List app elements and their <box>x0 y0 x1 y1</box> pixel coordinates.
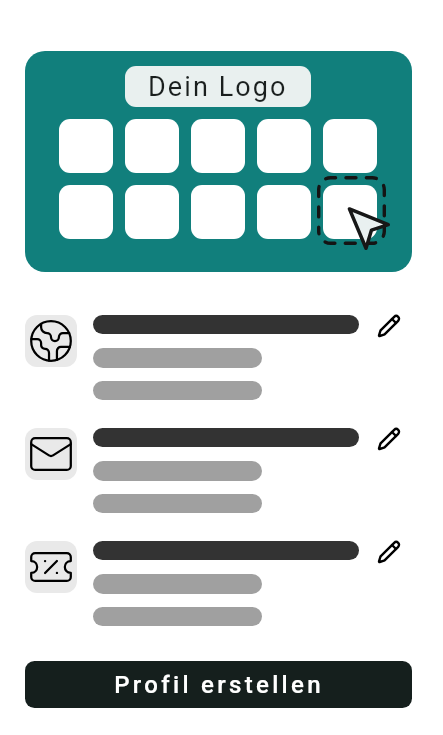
button[interactable]: Profil erstellen <box>25 661 412 708</box>
staticText: Profil erstellen <box>114 671 324 699</box>
button[interactable]: Bearbeiten <box>372 535 405 568</box>
button[interactable] <box>25 541 413 626</box>
button[interactable]: Bearbeiten <box>372 309 405 342</box>
button[interactable]: Dein Logo <box>125 66 311 107</box>
button[interactable] <box>25 315 413 400</box>
button[interactable]: Dein Logo <box>25 51 412 272</box>
button[interactable] <box>25 428 413 513</box>
button[interactable]: Bearbeiten <box>372 422 405 455</box>
staticText: Dein Logo <box>148 71 288 103</box>
